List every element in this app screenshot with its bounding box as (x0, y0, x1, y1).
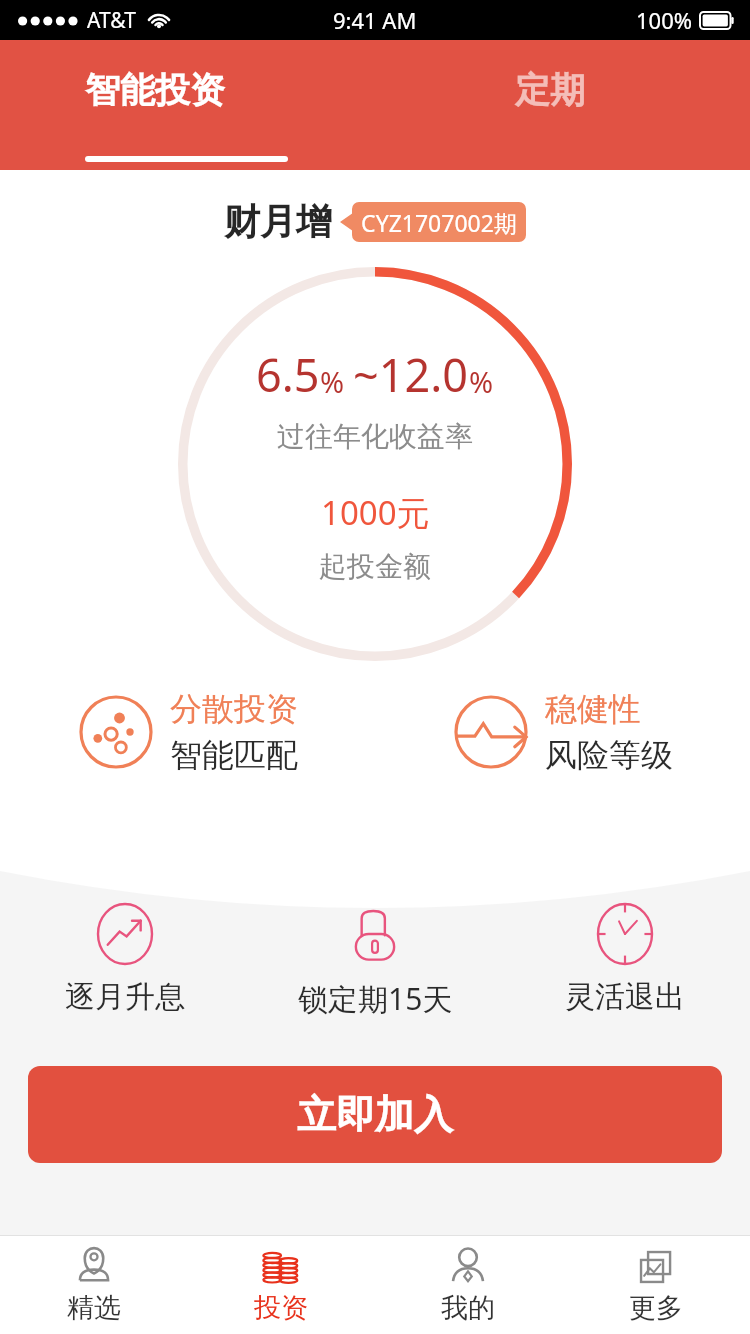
button[interactable]: Lock period (250, 902, 500, 1019)
staticText: 智能匹配 (170, 735, 298, 775)
button[interactable]: 立即加入 (28, 1066, 722, 1163)
staticText: 锁定期15天 (298, 978, 453, 1019)
staticText: 100% (636, 5, 693, 35)
button[interactable]: 更多 (562, 1235, 750, 1334)
button[interactable]: Flexible exit (500, 902, 750, 1016)
button[interactable]: 精选 (0, 1235, 187, 1334)
staticText: 分散投资 (170, 689, 298, 729)
button[interactable]: 我的 (374, 1235, 562, 1334)
staticText: ~12.0 (353, 344, 469, 405)
staticText: 立即加入 (297, 1090, 453, 1139)
staticText: 1000元 (321, 490, 430, 535)
button[interactable]: Monthly interest (0, 902, 250, 1016)
staticText: 我的 (441, 1291, 495, 1325)
staticText: % (320, 362, 345, 401)
staticText: 更多 (629, 1291, 683, 1325)
staticText: 起投金额 (319, 549, 431, 584)
button[interactable]: 分散投资 (0, 689, 375, 775)
staticText: AT&T (87, 6, 136, 35)
button[interactable]: 投资 (187, 1235, 374, 1334)
staticText: 稳健性 (545, 689, 641, 729)
staticText: 投资 (254, 1291, 308, 1325)
staticText: 财月增 (224, 199, 332, 244)
staticText: 逐月升息 (65, 978, 185, 1016)
staticText: CYZ1707002期 (352, 207, 526, 238)
button[interactable]: 稳健性 (375, 689, 750, 775)
button[interactable]: 智能投资 (79, 58, 231, 122)
staticText: 智能投资 (85, 68, 225, 112)
staticText: % (469, 362, 494, 401)
button[interactable]: 定期 (509, 58, 591, 122)
staticText: 定期 (515, 68, 585, 112)
staticText: 风险等级 (545, 735, 673, 775)
staticText: 过往年化收益率 (277, 419, 473, 454)
staticText: 6.5 (256, 344, 320, 405)
staticText: 9:41 AM (333, 5, 417, 35)
staticText: 灵活退出 (565, 978, 685, 1016)
staticText: 精选 (67, 1291, 121, 1325)
